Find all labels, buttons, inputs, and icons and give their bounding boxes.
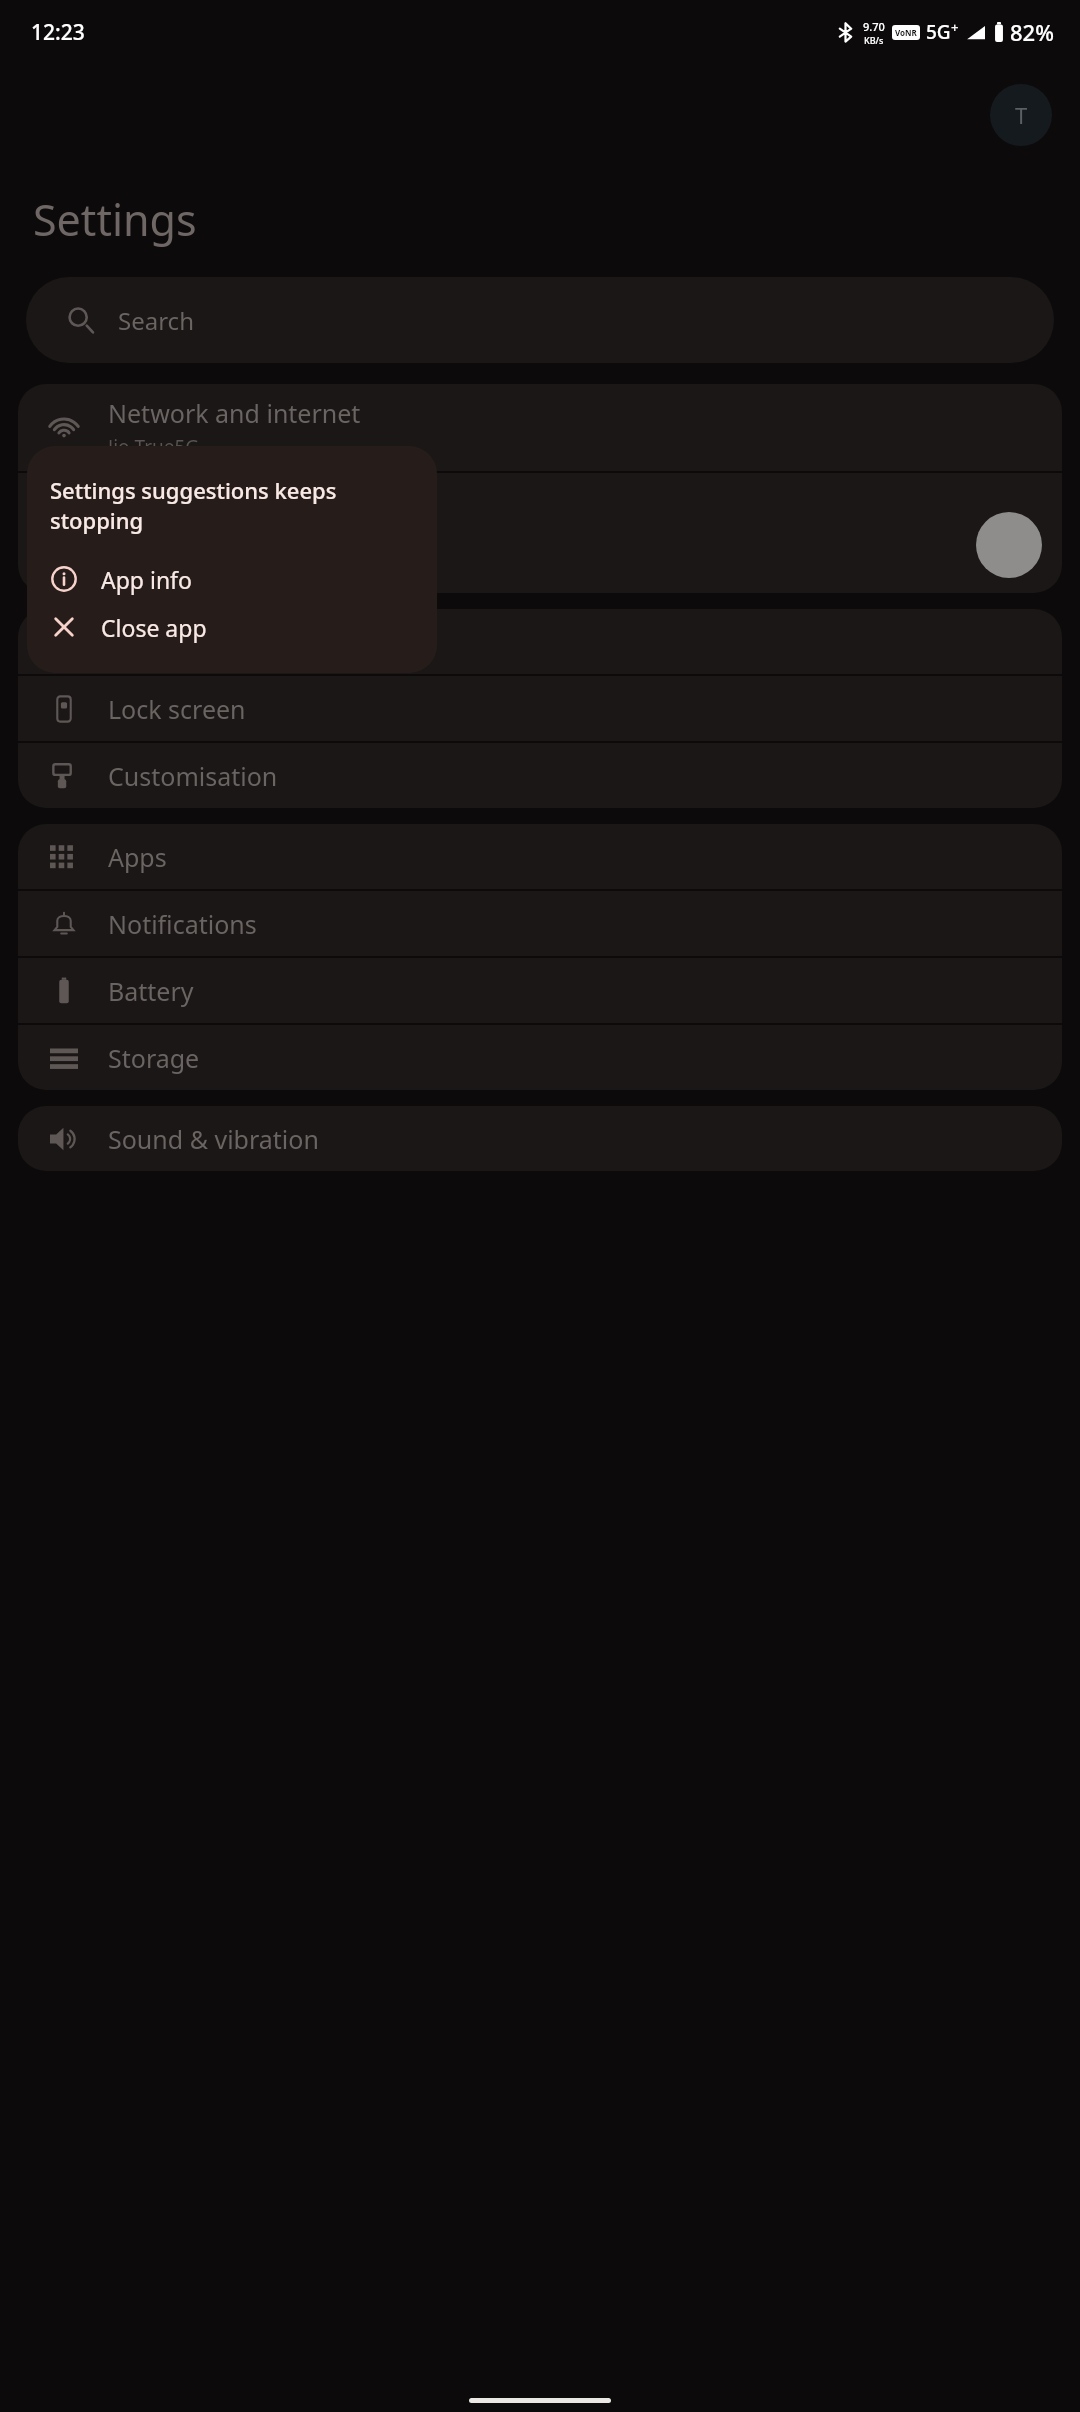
staticText: 82% [1010, 17, 1054, 47]
button[interactable]: Lock screen [18, 676, 1062, 741]
staticText: + [951, 18, 959, 36]
staticText: Apps [108, 840, 167, 874]
button[interactable]: Sound & vibration [18, 1106, 1062, 1171]
button[interactable]: Search [26, 277, 1054, 363]
button[interactable]: Battery [18, 958, 1062, 1023]
button[interactable]: Connected devices [18, 473, 1062, 593]
staticText: Storage [108, 1041, 200, 1075]
staticText: Search [118, 304, 194, 337]
button[interactable]: Storage [18, 1025, 1062, 1090]
staticText: Jio True5G [108, 434, 200, 460]
button[interactable]: Network and internet [18, 384, 1062, 471]
staticText: Lock screen [108, 692, 246, 726]
button[interactable]: Close app [27, 603, 437, 651]
staticText: Battery [108, 974, 194, 1008]
button[interactable]: Notifications [18, 891, 1062, 956]
staticText: App info [101, 564, 192, 595]
staticText: Connected devices [108, 501, 328, 535]
staticText: Display [108, 625, 194, 659]
staticText: Settings [33, 190, 197, 249]
button[interactable]: Display [18, 609, 1062, 674]
button[interactable]: App info [27, 555, 437, 603]
button[interactable]: Apps [18, 824, 1062, 889]
staticText: Settings suggestions keeps stopping [50, 475, 421, 535]
button[interactable]: Account [990, 84, 1052, 146]
staticText: T [1015, 100, 1028, 130]
staticText: 5G [926, 19, 951, 45]
staticText: Sound & vibration [108, 1122, 319, 1156]
staticText: 9.70 [863, 19, 885, 34]
staticText: 12:23 [31, 18, 85, 47]
staticText: Notifications [108, 907, 257, 941]
staticText: Close app [101, 612, 207, 643]
staticText: KB/s [864, 34, 884, 46]
button[interactable]: Customisation [18, 743, 1062, 808]
staticText: Network and internet [108, 396, 361, 430]
staticText: Customisation [108, 759, 278, 793]
staticText: VoNR [895, 27, 917, 38]
